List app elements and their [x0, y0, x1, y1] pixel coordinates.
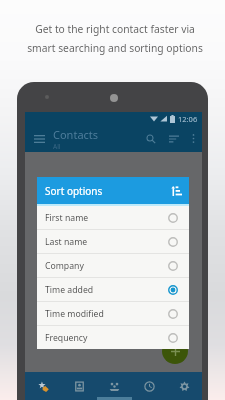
staticText: All — [53, 142, 61, 151]
button[interactable]: Sort — [162, 127, 185, 150]
button[interactable]: Contacts — [61, 372, 97, 400]
button[interactable]: Groups — [97, 372, 132, 400]
staticText: 12:06 — [178, 114, 198, 124]
button[interactable]: Settings — [167, 372, 202, 400]
button[interactable]: Open navigation drawer — [25, 125, 53, 152]
staticText: Company — [45, 260, 84, 272]
button[interactable]: Recent — [132, 372, 167, 400]
staticText: Time modified — [45, 308, 104, 320]
staticText: Frequency — [45, 332, 88, 344]
button[interactable]: Time modified — [37, 302, 189, 325]
staticText: Sort options — [45, 184, 103, 198]
button[interactable]: Add contact — [162, 338, 188, 364]
staticText: Get to the right contact faster via smar… — [27, 22, 203, 55]
staticText: First name — [45, 212, 89, 224]
button[interactable]: First name — [37, 206, 189, 229]
button[interactable]: Time added — [37, 278, 189, 301]
button[interactable]: Last name — [37, 230, 189, 253]
button[interactable]: Frequency — [37, 326, 189, 349]
button[interactable]: Favourites — [25, 372, 61, 400]
staticText: Time added — [45, 284, 94, 296]
staticText: Contacts — [53, 127, 99, 142]
staticText: Last name — [45, 236, 88, 248]
button[interactable]: Company — [37, 254, 189, 277]
button[interactable]: Search — [139, 127, 162, 150]
button[interactable]: More options — [185, 127, 202, 150]
